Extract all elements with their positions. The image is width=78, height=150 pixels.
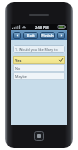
button[interactable]: Finish <box>40 32 55 39</box>
button[interactable]: Home <box>34 131 44 141</box>
button[interactable]: Next <box>57 32 65 39</box>
staticText: No <box>15 66 21 71</box>
staticText: Maybe <box>15 74 27 79</box>
staticText: Yes <box>15 58 22 63</box>
button[interactable]: Exit <box>23 32 38 39</box>
button[interactable]: Previous <box>13 32 21 39</box>
button[interactable]: Yes <box>13 56 65 64</box>
staticText: 1. Would you like Mary to buy it? <box>15 47 63 52</box>
staticText: Finish <box>41 33 54 39</box>
staticText: 2:58 PM <box>35 25 49 30</box>
button[interactable]: Maybe <box>13 72 65 80</box>
button[interactable]: No <box>13 64 65 72</box>
staticText: Exit <box>27 33 35 39</box>
